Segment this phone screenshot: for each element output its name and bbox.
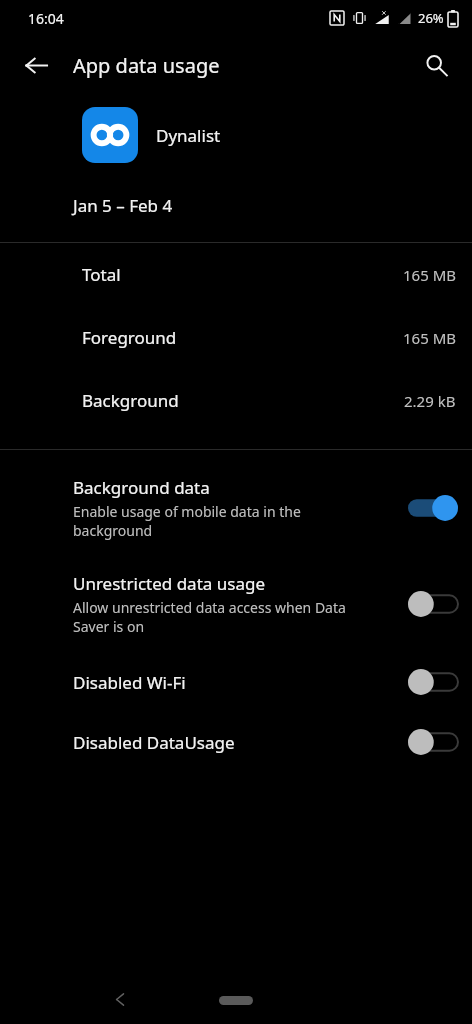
staticText: Disabled Wi-Fi (73, 671, 186, 694)
staticText: 165 MB (403, 265, 456, 285)
staticText: Jan 5 – Feb 4 (73, 194, 173, 217)
staticText: Dynalist (156, 124, 221, 147)
staticText: Disabled DataUsage (73, 731, 235, 754)
button[interactable]: Jan 5 – Feb 4 (0, 176, 472, 234)
button[interactable]: Off (408, 668, 458, 696)
staticText: Unrestricted data usage (73, 572, 265, 595)
staticText: 16:04 (28, 9, 64, 28)
button[interactable]: On (408, 494, 458, 522)
button[interactable]: Background data (0, 460, 472, 556)
staticText: Background data (73, 476, 210, 499)
button[interactable]: Off (408, 728, 458, 756)
button[interactable]: Background (0, 369, 472, 432)
staticText: Allow unrestricted data access when Data… (73, 598, 346, 636)
staticText: Total (82, 263, 121, 286)
button[interactable]: Back (12, 41, 60, 89)
button[interactable]: Disabled Wi-Fi (0, 652, 472, 712)
button[interactable]: Total (0, 243, 472, 306)
staticText: Foreground (82, 326, 177, 349)
staticText: 2.29 kB (404, 391, 456, 411)
button[interactable]: Foreground (0, 306, 472, 369)
staticText: Background (82, 389, 179, 412)
staticText: 165 MB (403, 328, 456, 348)
staticText: Enable usage of mobile data in the backg… (73, 502, 301, 540)
button[interactable]: Disabled DataUsage (0, 712, 472, 772)
staticText: App data usage (73, 52, 220, 79)
button[interactable]: Dynalist (0, 94, 472, 176)
button[interactable]: Search (412, 41, 460, 89)
button[interactable]: Back (98, 977, 142, 1021)
button[interactable]: Off (408, 590, 458, 618)
button[interactable]: Unrestricted data usage (0, 556, 472, 652)
staticText: 26% (418, 9, 444, 27)
button[interactable]: Home (219, 996, 253, 1005)
